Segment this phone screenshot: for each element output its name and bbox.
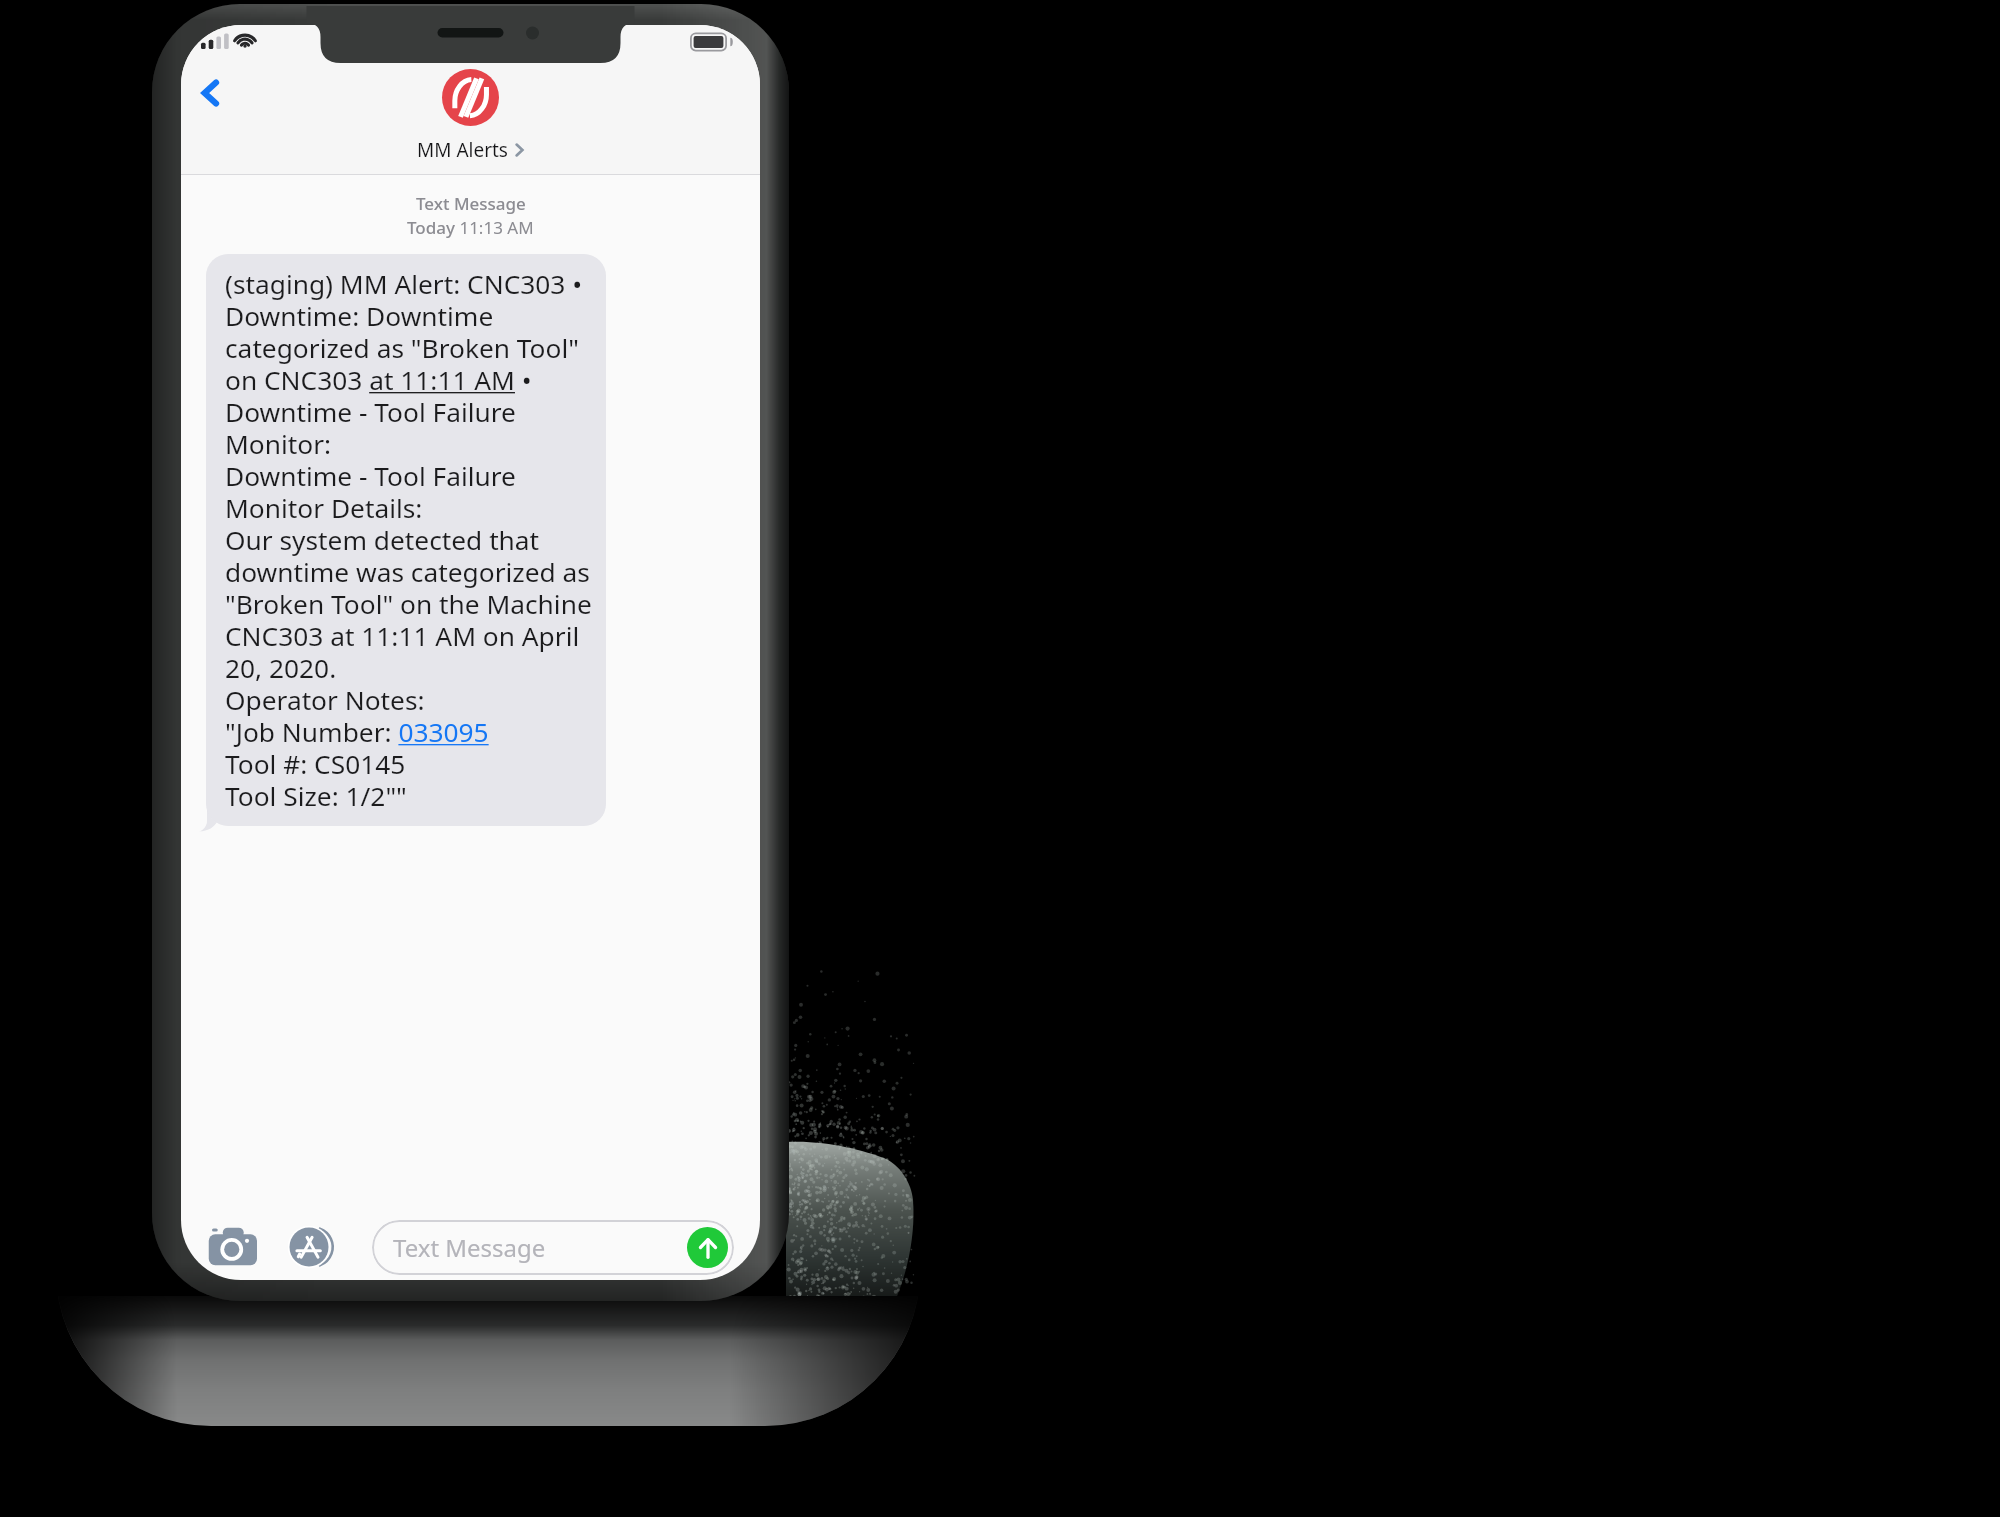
button[interactable]: MM Alerts: [417, 69, 524, 163]
staticText: Text Message: [393, 1231, 546, 1264]
button[interactable]: (staging) MM Alert: CNC303 • Downtime: D…: [206, 254, 606, 826]
staticText: (staging) MM Alert: CNC303 • Downtime: D…: [225, 266, 600, 814]
staticText: MM Alerts: [417, 137, 508, 163]
staticText: Text Message: [416, 192, 526, 215]
button[interactable]: Camera: [207, 1227, 257, 1269]
button[interactable]: Send: [687, 1227, 728, 1268]
staticText: Today 11:13 AM: [407, 216, 534, 239]
button[interactable]: App Store: [289, 1225, 339, 1269]
button[interactable]: Text Message: [372, 1220, 734, 1275]
button[interactable]: Back: [189, 71, 233, 115]
